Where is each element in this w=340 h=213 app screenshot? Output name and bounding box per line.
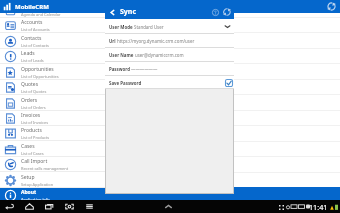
staticText: List of Quotes bbox=[21, 89, 47, 94]
button[interactable]: Products bbox=[0, 126, 105, 141]
staticText: MobileCRM bbox=[15, 3, 49, 11]
staticText: List of Orders bbox=[21, 105, 46, 110]
button[interactable]: Quotes bbox=[0, 80, 105, 95]
staticText: Setup bbox=[21, 174, 35, 181]
staticText: Orders bbox=[21, 97, 38, 104]
button[interactable]: Leads bbox=[0, 49, 105, 64]
button[interactable]: Activities bbox=[0, 2, 105, 18]
staticText: Recent calls management bbox=[21, 166, 69, 171]
button[interactable]: Refresh bbox=[222, 7, 232, 17]
staticText: user@dynamiccrm.com bbox=[135, 52, 231, 58]
staticText: Save Password bbox=[109, 80, 225, 86]
staticText: List of Invoices bbox=[21, 120, 49, 125]
staticText: Quotes bbox=[21, 81, 39, 88]
button[interactable]: Help bbox=[211, 8, 220, 17]
button[interactable]: Setup bbox=[0, 172, 105, 188]
staticText: Call Import bbox=[21, 158, 48, 165]
staticText: Application info bbox=[21, 197, 50, 201]
staticText: Activities bbox=[21, 4, 42, 11]
button[interactable]: Accounts bbox=[0, 18, 105, 33]
staticText: Accounts bbox=[21, 19, 43, 26]
staticText: About bbox=[21, 189, 37, 196]
staticText: Cases bbox=[21, 143, 35, 150]
staticText: Standard User bbox=[134, 24, 224, 30]
button[interactable]: Opportunities bbox=[0, 64, 105, 80]
staticText: Agenda and Calendar bbox=[21, 12, 61, 17]
staticText: User Mode bbox=[109, 24, 133, 30]
staticText: List of Products bbox=[21, 135, 50, 140]
button[interactable]: Screenshot bbox=[64, 201, 75, 212]
button[interactable]: Back bbox=[4, 201, 15, 212]
button[interactable]: Cases bbox=[0, 141, 105, 157]
staticText: List of Leads bbox=[21, 58, 44, 63]
staticText: List of Opportunities bbox=[21, 74, 59, 79]
staticText: List of Contacts bbox=[21, 43, 49, 48]
button[interactable]: Synchronize bbox=[326, 1, 337, 12]
staticText: 11:41 bbox=[309, 202, 328, 212]
button[interactable]: Home bbox=[24, 201, 35, 212]
staticText: Password bbox=[109, 66, 130, 72]
staticText: Setup Application bbox=[21, 182, 54, 187]
button[interactable]: Save Password bbox=[105, 76, 234, 89]
button[interactable]: Back bbox=[109, 9, 116, 16]
staticText: List of Accounts bbox=[21, 27, 50, 32]
button[interactable]: Password bbox=[105, 62, 234, 76]
button[interactable]: Url bbox=[105, 34, 234, 48]
button[interactable]: User Mode bbox=[105, 19, 234, 34]
button[interactable]: Invoices bbox=[0, 111, 105, 126]
staticText: User Name bbox=[109, 52, 134, 58]
button[interactable]: Call Import bbox=[0, 157, 105, 172]
button[interactable]: Contacts bbox=[0, 33, 105, 49]
staticText: Sync bbox=[120, 7, 137, 17]
staticText: Products bbox=[21, 127, 42, 134]
staticText: Leads bbox=[21, 50, 35, 57]
button[interactable]: About bbox=[0, 188, 105, 201]
staticText: —————— bbox=[131, 66, 231, 72]
button[interactable]: Orders bbox=[0, 95, 105, 111]
staticText: https://myorg.dynamic.crm.com/user bbox=[117, 38, 231, 44]
button[interactable]: Recent apps bbox=[44, 201, 55, 212]
staticText: List of Cases bbox=[21, 151, 44, 156]
staticText: Contacts bbox=[21, 35, 42, 42]
staticText: Url bbox=[109, 38, 116, 44]
staticText: Opportunities bbox=[21, 66, 54, 73]
button[interactable]: User Name bbox=[105, 48, 234, 62]
button[interactable]: Menu bbox=[84, 201, 95, 212]
staticText: Invoices bbox=[21, 112, 41, 119]
